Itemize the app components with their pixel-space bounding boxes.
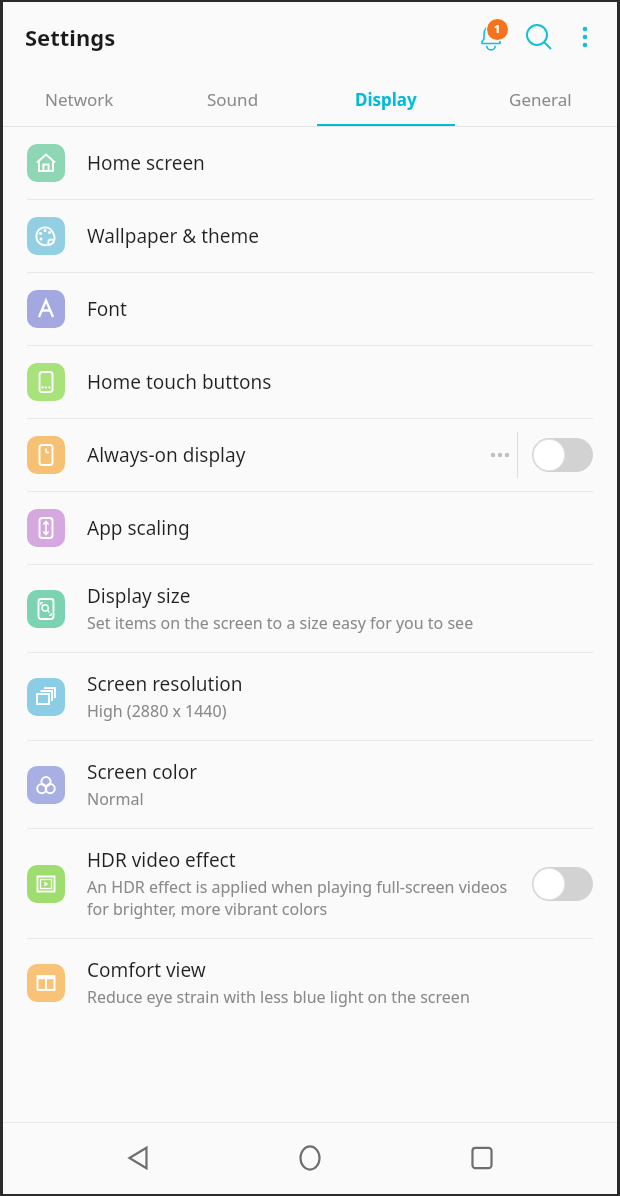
button[interactable]: Display [309,71,463,127]
button[interactable]: Font [3,273,617,345]
staticText: Wallpaper & theme [87,223,259,249]
staticText: General [509,88,572,111]
button[interactable]: More options [563,15,607,59]
staticText: Display [355,88,417,111]
button[interactable]: Back [103,1122,175,1194]
staticText: Reduce eye strain with less blue light o… [87,986,470,1008]
button[interactable]: HDR video effect [3,829,617,938]
staticText: Always-on display [87,442,246,468]
staticText: App scaling [87,515,190,541]
button[interactable]: Wallpaper & theme [3,200,617,272]
staticText: HDR video effect [87,847,236,873]
staticText: Settings [25,22,116,52]
button[interactable]: Toggle [532,867,593,901]
staticText: Screen color [87,759,197,785]
button[interactable]: Display size [3,565,617,652]
staticText: Screen resolution [87,671,243,697]
staticText: Home touch buttons [87,369,272,395]
button[interactable]: Screen resolution [3,653,617,740]
button[interactable]: Toggle [532,438,593,472]
staticText: Font [87,296,127,322]
button[interactable]: App scaling [3,492,617,564]
staticText: Network [45,88,114,111]
button[interactable]: Home screen [3,127,617,199]
staticText: High (2880 x 1440) [87,700,227,722]
button[interactable]: Sound [156,71,309,127]
staticText: An HDR effect is applied when playing fu… [87,876,524,920]
staticText: Display size [87,583,191,609]
button[interactable]: Comfort view [3,939,617,1026]
staticText: Set items on the screen to a size easy f… [87,612,474,634]
button[interactable]: General [463,71,617,127]
staticText: Sound [207,88,259,111]
button[interactable]: Notifications [467,13,515,61]
button[interactable]: Network [3,71,156,127]
button[interactable]: Home [274,1122,346,1194]
button[interactable]: Always-on display [3,419,617,491]
button[interactable]: Screen color [3,741,617,828]
button[interactable]: Recent apps [446,1122,518,1194]
staticText: Comfort view [87,957,206,983]
staticText: 1 [494,21,501,36]
staticText: Home screen [87,150,205,176]
button[interactable]: Search [515,13,563,61]
button[interactable]: Home touch buttons [3,346,617,418]
button[interactable]: Options [483,431,517,479]
staticText: Normal [87,788,144,810]
